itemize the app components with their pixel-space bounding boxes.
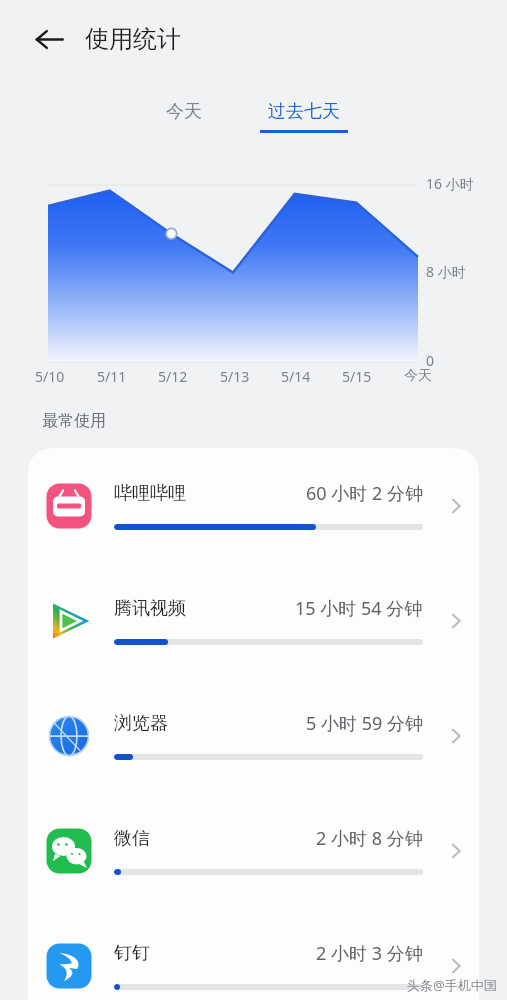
- staticText: 5/13: [220, 367, 250, 386]
- button[interactable]: 腾讯视频: [28, 563, 479, 678]
- staticText: 微信: [114, 827, 150, 850]
- staticText: 60 小时 2 分钟: [306, 481, 423, 506]
- button[interactable]: 过去七天: [256, 94, 352, 133]
- staticText: 8 小时: [426, 262, 466, 281]
- button[interactable]: 浏览器: [28, 678, 479, 793]
- staticText: 5/12: [158, 367, 188, 386]
- staticText: 5/14: [281, 367, 311, 386]
- staticText: 2 小时 8 分钟: [316, 826, 423, 851]
- button[interactable]: 哔哩哔哩: [28, 448, 479, 563]
- staticText: 哔哩哔哩: [114, 482, 186, 505]
- staticText: 15 小时 54 分钟: [295, 596, 423, 621]
- staticText: 使用统计: [85, 24, 181, 54]
- staticText: 5 小时 59 分钟: [306, 711, 423, 736]
- button[interactable]: 今天: [158, 94, 210, 129]
- staticText: 腾讯视频: [114, 597, 186, 620]
- staticText: 最常使用: [42, 411, 106, 431]
- button[interactable]: 微信: [28, 793, 479, 908]
- staticText: 5/15: [342, 367, 372, 386]
- staticText: 过去七天: [268, 100, 340, 123]
- staticText: 2 小时 3 分钟: [316, 941, 423, 966]
- staticText: 头条@手机中国: [407, 976, 497, 994]
- staticText: 钉钉: [114, 942, 150, 965]
- button[interactable]: 钉钉: [28, 908, 479, 1000]
- staticText: 16 小时: [426, 174, 474, 193]
- staticText: 浏览器: [114, 712, 168, 735]
- staticText: 5/11: [97, 367, 127, 386]
- staticText: 5/10: [35, 367, 65, 386]
- staticText: 今天: [166, 100, 202, 123]
- staticText: 0: [426, 351, 435, 370]
- staticText: 今天: [404, 367, 432, 385]
- button[interactable]: Back: [26, 16, 72, 62]
